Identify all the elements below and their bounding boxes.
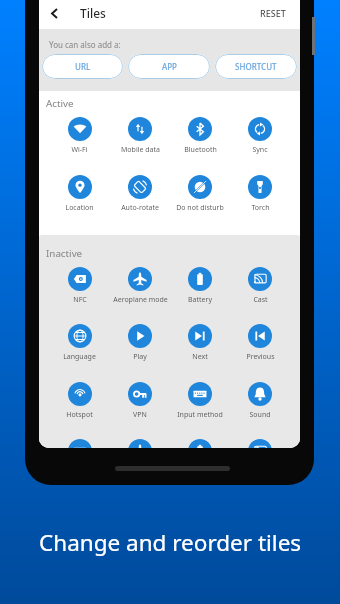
staticText: You can also add a:	[49, 39, 121, 50]
button[interactable]: Play	[110, 324, 170, 362]
button[interactable]: APP	[128, 54, 210, 79]
staticText: URL	[75, 61, 91, 72]
staticText: Wi-Fi	[71, 145, 88, 155]
button[interactable]: Previous	[230, 324, 290, 362]
staticText: Change and reorder tiles	[39, 527, 302, 558]
button[interactable]: Back	[39, 0, 69, 26]
button[interactable]: Power	[230, 439, 290, 448]
staticText: Active	[46, 97, 74, 110]
button[interactable]: Language	[49, 324, 110, 362]
staticText: Aeroplane mode	[113, 295, 168, 305]
staticText: Input method	[177, 410, 223, 420]
button[interactable]: Battery	[170, 267, 230, 305]
button[interactable]: Reader	[170, 439, 230, 448]
button[interactable]: Location	[49, 175, 110, 213]
button[interactable]: NFC	[49, 267, 110, 305]
button[interactable]: Data saver	[49, 439, 110, 448]
button[interactable]: Aeroplane mode	[110, 267, 170, 305]
staticText: Sync	[252, 145, 268, 155]
button[interactable]: SHORTCUT	[215, 54, 297, 79]
staticText: Play	[133, 352, 147, 362]
staticText: SHORTCUT	[235, 61, 277, 72]
staticText: Auto-rotate	[121, 203, 159, 213]
staticText: Sound	[249, 410, 271, 420]
staticText: Hotspot	[66, 410, 93, 420]
button[interactable]: Bluetooth	[170, 117, 230, 155]
button[interactable]: Auto-rotate	[110, 175, 170, 213]
staticText: Mobile data	[121, 145, 160, 155]
staticText: Location	[65, 203, 94, 213]
button[interactable]: Input method	[170, 382, 230, 420]
button[interactable]: Cast	[230, 267, 290, 305]
staticText: Next	[192, 352, 208, 362]
staticText: APP	[162, 61, 177, 72]
staticText: Tiles	[80, 5, 106, 21]
button[interactable]: Do not disturb	[170, 175, 230, 213]
staticText: Do not disturb	[176, 203, 224, 213]
staticText: Inactive	[46, 247, 83, 260]
staticText: Previous	[246, 352, 275, 362]
button[interactable]: Sound	[230, 382, 290, 420]
button[interactable]: VPN	[110, 382, 170, 420]
button[interactable]: Hotspot	[49, 382, 110, 420]
button[interactable]: Wi-Fi	[49, 117, 110, 155]
staticText: NFC	[73, 295, 87, 305]
staticText: Cast	[253, 295, 268, 305]
staticText: Torch	[251, 203, 270, 213]
staticText: VPN	[133, 410, 147, 420]
button[interactable]: Torch	[230, 175, 290, 213]
staticText: Bluetooth	[184, 145, 217, 155]
button[interactable]: URL	[42, 54, 123, 79]
button[interactable]: Night mode	[110, 439, 170, 448]
staticText: Battery	[188, 295, 212, 305]
staticText: RESET	[260, 7, 286, 19]
button[interactable]: RESET	[252, 1, 300, 25]
button[interactable]: Mobile data	[110, 117, 170, 155]
button[interactable]: Sync	[230, 117, 290, 155]
button[interactable]: Next	[170, 324, 230, 362]
staticText: Language	[63, 352, 96, 362]
